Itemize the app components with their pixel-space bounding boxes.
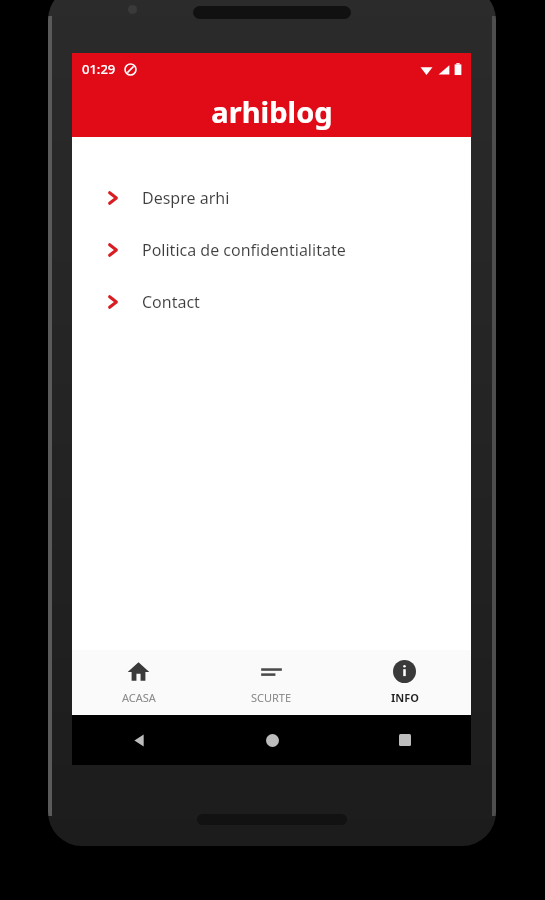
button[interactable]: SCURTE (205, 650, 338, 715)
staticText: ACASA (122, 690, 156, 705)
button[interactable]: Despre arhi (72, 181, 471, 215)
staticText: Contact (142, 291, 200, 313)
staticText: Politica de confidentialitate (142, 239, 346, 261)
staticText: arhiblog (211, 92, 333, 131)
button[interactable]: ACASA (72, 650, 205, 715)
button[interactable]: Home (257, 725, 287, 755)
button[interactable]: Recent apps (390, 725, 420, 755)
staticText: Despre arhi (142, 187, 230, 209)
button[interactable]: Politica de confidentialitate (72, 233, 471, 267)
button[interactable]: INFO (338, 650, 471, 715)
staticText: 01:29 (82, 60, 116, 78)
button[interactable]: Back (124, 725, 154, 755)
staticText: SCURTE (251, 690, 292, 705)
button[interactable]: Contact (72, 285, 471, 319)
staticText: INFO (391, 690, 419, 705)
